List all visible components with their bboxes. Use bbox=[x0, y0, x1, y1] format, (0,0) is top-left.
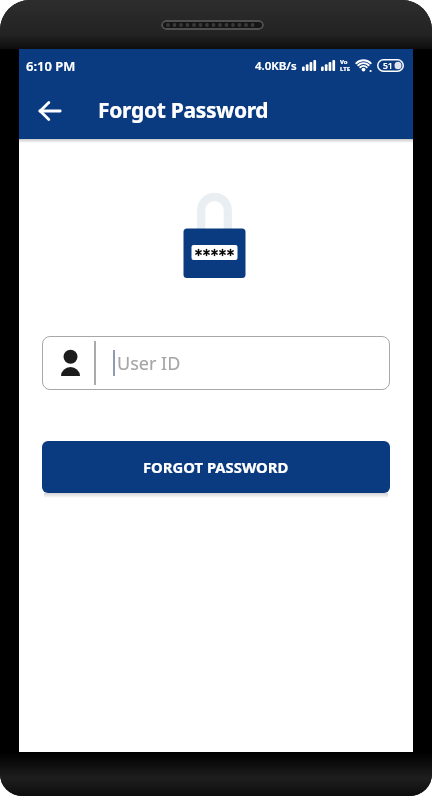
staticText: Vo LTE bbox=[340, 58, 351, 73]
staticText: User ID bbox=[117, 351, 181, 376]
button[interactable] bbox=[38, 99, 62, 123]
staticText: 4.0KB/s bbox=[255, 58, 297, 74]
staticText: 6:10 PM bbox=[26, 57, 76, 75]
button[interactable]: FORGOT PASSWORD bbox=[42, 441, 390, 493]
button[interactable]: User ID bbox=[42, 336, 390, 390]
staticText: 51 bbox=[383, 60, 393, 72]
staticText: Forgot Password bbox=[98, 96, 269, 125]
staticText: FORGOT PASSWORD bbox=[143, 457, 289, 477]
